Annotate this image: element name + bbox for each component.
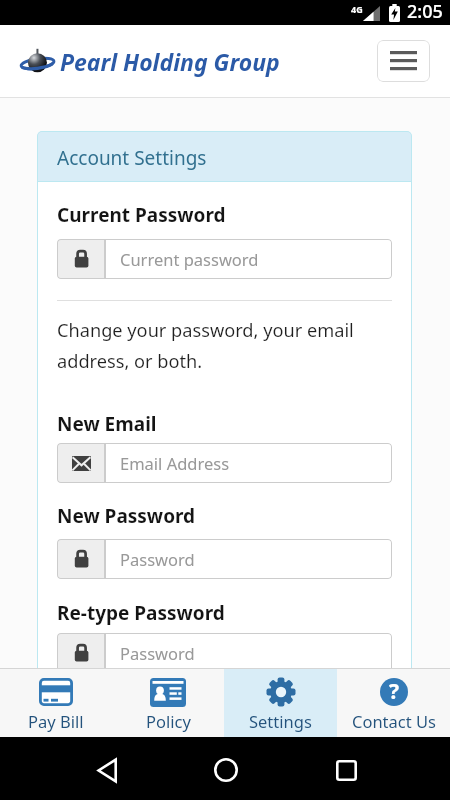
staticText: New Password [57,503,196,529]
staticText: Password [120,548,195,570]
staticText: ? [389,678,400,705]
button[interactable] [85,752,129,788]
button[interactable]: Current password [57,239,392,279]
button[interactable] [377,40,430,82]
button[interactable] [204,752,248,788]
staticText: Email Address [120,452,230,474]
staticText: 2:05 [407,0,443,24]
button[interactable]: Settings [224,669,337,737]
staticText: Pearl Holding Group [60,46,280,77]
button[interactable]: ? [337,669,450,737]
staticText: Settings [249,710,312,732]
staticText: Current Password [57,202,226,228]
staticText: Current password [120,248,259,270]
staticText: Contact Us [352,710,436,732]
staticText: 4G [351,3,363,15]
button[interactable]: Policy [112,669,224,737]
button[interactable]: Email Address [57,443,392,483]
staticText: Password [120,642,195,664]
button[interactable]: Pay Bill [0,669,112,737]
staticText: New Email [57,411,157,437]
staticText: Policy [146,710,191,732]
staticText: Re-type Password [57,600,225,626]
button[interactable]: Password [57,633,392,668]
button[interactable]: Password [57,539,392,579]
staticText: Pay Bill [28,710,84,732]
staticText: Change your password, your email address… [57,318,354,373]
button[interactable] [324,752,368,788]
staticText: Account Settings [57,145,207,171]
